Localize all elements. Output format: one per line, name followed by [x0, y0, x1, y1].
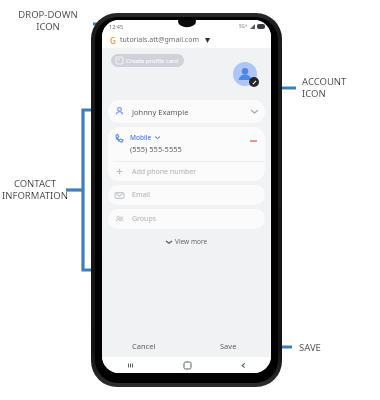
button[interactable]: Create profile card — [116, 54, 179, 67]
staticText: ACCOUNT ICON — [302, 75, 347, 100]
staticText: SAVE — [299, 341, 321, 354]
button[interactable]: Remove phone number — [248, 136, 258, 146]
staticText: G — [110, 35, 116, 46]
staticText: Groups — [132, 214, 157, 224]
staticText: Email — [132, 190, 150, 200]
button[interactable]: G — [110, 32, 263, 48]
staticText: 5G+ — [239, 23, 248, 29]
staticText: Johnny Example — [132, 107, 189, 117]
button[interactable]: Drop-down — [203, 36, 211, 44]
button[interactable]: Back — [215, 357, 271, 373]
button[interactable]: View more — [108, 233, 265, 250]
button[interactable]: Mobile — [108, 127, 265, 161]
staticText: (555) 555-5555 — [130, 144, 182, 154]
staticText: DROP-DOWN ICON — [6, 8, 90, 33]
button[interactable]: Recent apps — [102, 357, 159, 373]
staticText: View more — [175, 237, 208, 246]
staticText: Cancel — [132, 341, 156, 351]
button[interactable]: Johnny Example — [108, 100, 265, 123]
button[interactable]: Add phone number — [115, 162, 258, 181]
staticText: tutorials.att@gmail.com — [120, 35, 199, 45]
staticText: Add phone number — [132, 167, 197, 177]
button[interactable]: Email — [108, 185, 265, 205]
button[interactable]: Account icon — [233, 62, 257, 86]
staticText: Mobile — [130, 133, 152, 142]
staticText: CONTACT INFORMATION — [1, 177, 69, 202]
button[interactable]: Save — [186, 335, 271, 357]
button[interactable]: Cancel — [102, 335, 186, 357]
button[interactable]: Home — [159, 357, 215, 373]
button[interactable]: Groups — [108, 209, 265, 229]
staticText: 12:45 — [109, 23, 124, 30]
staticText: Create profile card — [126, 57, 179, 65]
staticText: Save — [220, 341, 237, 351]
